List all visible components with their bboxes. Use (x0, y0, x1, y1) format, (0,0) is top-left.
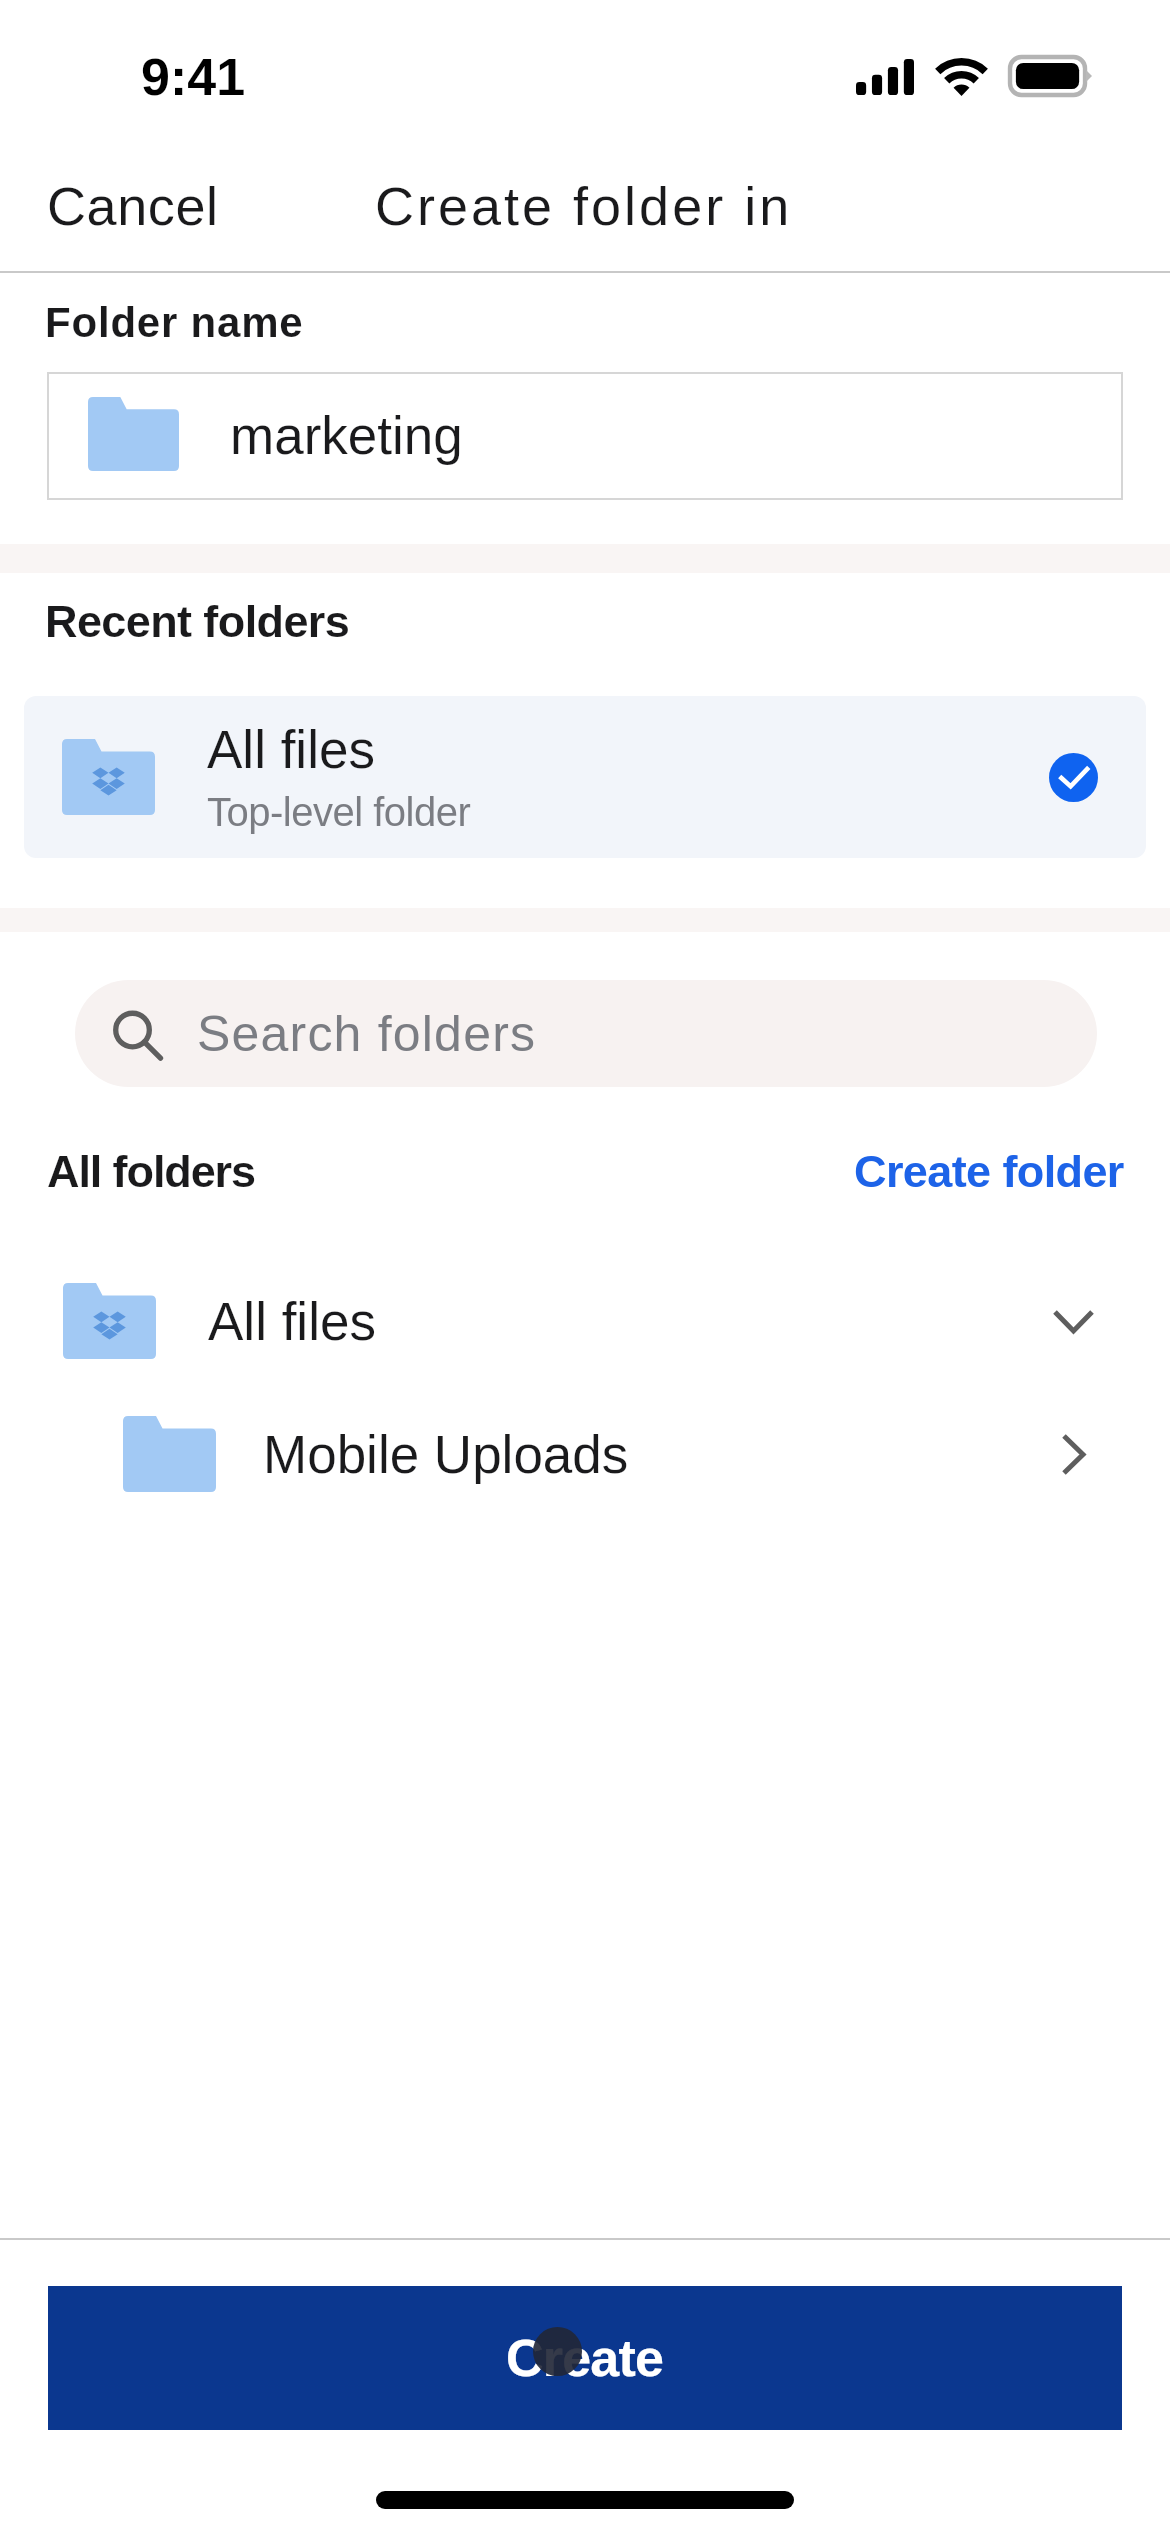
button[interactable]: Cancel (11, 162, 255, 250)
staticText: Folder name (45, 299, 304, 346)
button[interactable]: Open Mobile Uploads (1018, 1399, 1128, 1509)
staticText: 9:41 (141, 48, 246, 106)
other: Selected (1049, 753, 1098, 802)
staticText: Create folder (854, 1146, 1124, 1196)
button[interactable]: All files (24, 696, 1146, 858)
button[interactable]: marketing (48, 373, 1122, 499)
button[interactable]: Create folder (818, 1122, 1160, 1220)
staticText: All files (207, 720, 375, 779)
button[interactable]: Mobile Uploads (0, 1398, 1170, 1510)
staticText: Create folder in (375, 176, 793, 236)
staticText: Search folders (197, 1006, 537, 1062)
staticText: marketing (230, 406, 463, 465)
button[interactable]: All files (0, 1265, 1170, 1377)
staticText: Cancel (47, 176, 219, 236)
staticText: Top-level folder (207, 790, 471, 835)
button[interactable]: Search folders (75, 980, 1097, 1087)
button[interactable]: Collapse All files (1018, 1266, 1128, 1376)
staticText: Create (506, 2329, 664, 2387)
staticText: All folders (47, 1146, 255, 1196)
staticText: All files (208, 1292, 376, 1351)
staticText: Mobile Uploads (263, 1425, 629, 1484)
staticText: Recent folders (45, 596, 350, 646)
button[interactable]: Create (48, 2286, 1122, 2430)
